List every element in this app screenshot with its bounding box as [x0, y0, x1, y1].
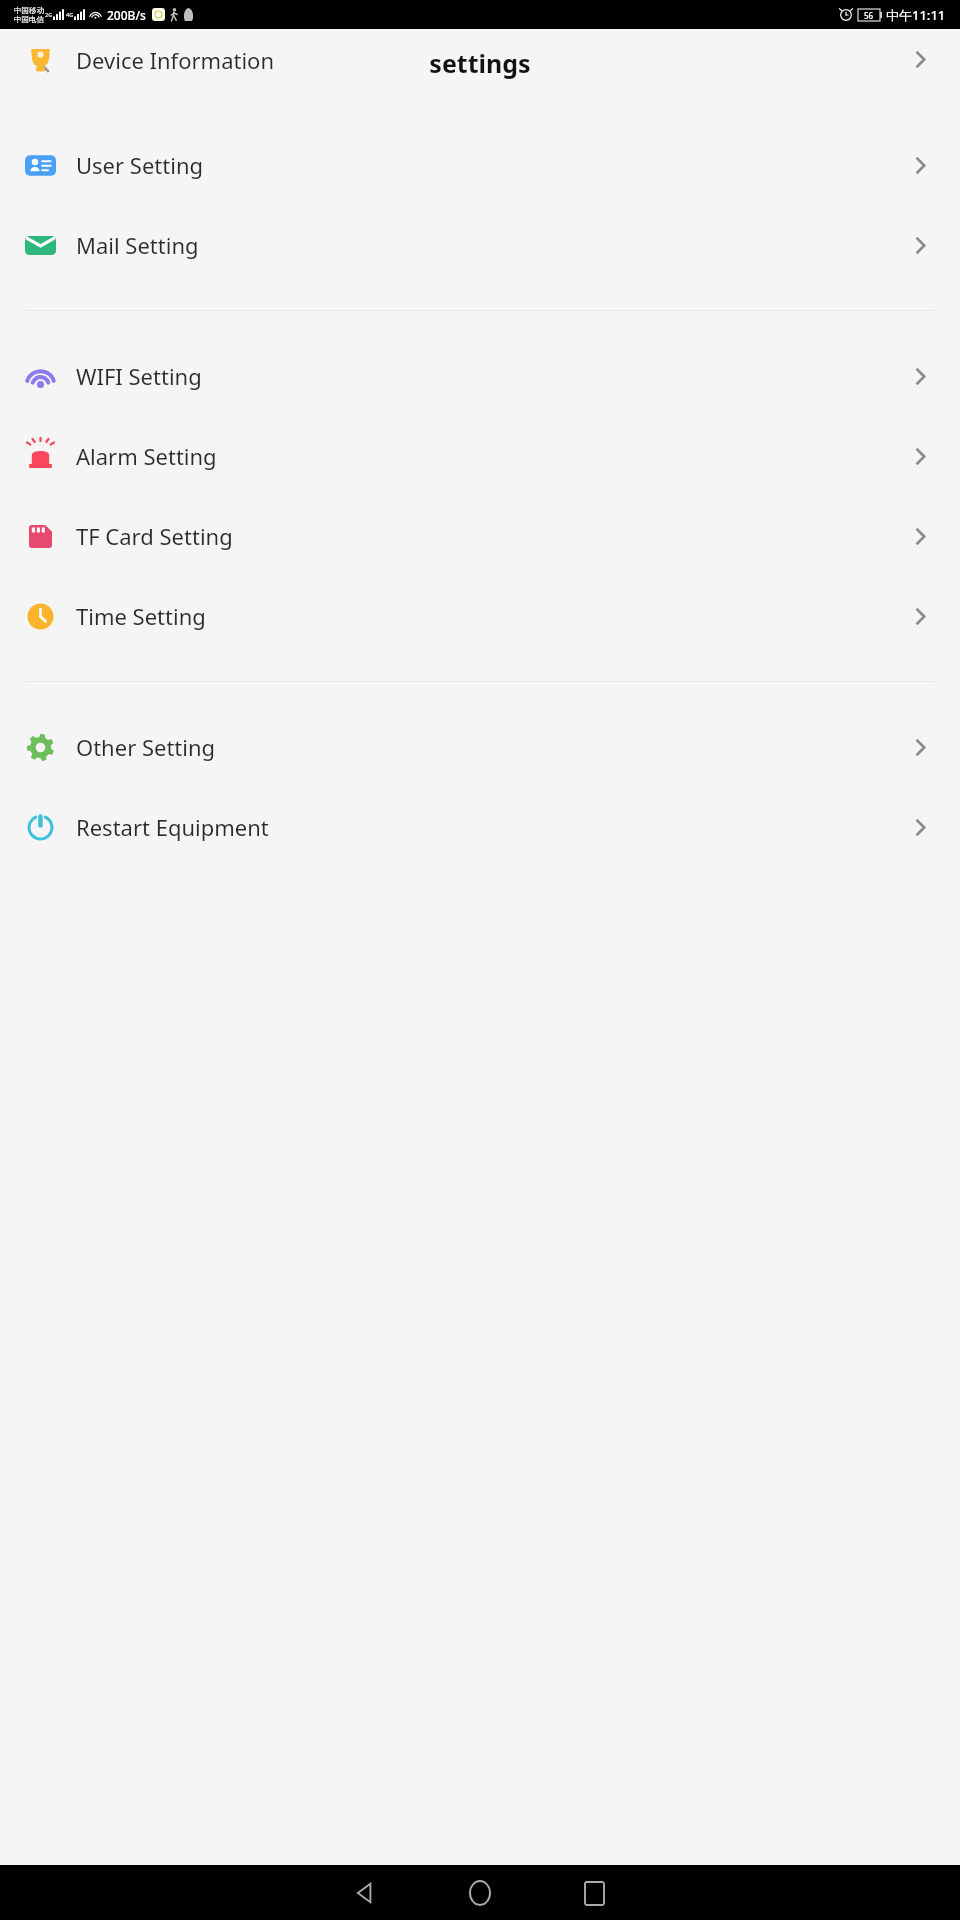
button[interactable]: Back — [340, 1867, 392, 1919]
button[interactable]: User Setting — [0, 125, 960, 205]
staticText: Alarm Setting — [76, 441, 217, 471]
staticText: Device Information — [76, 45, 275, 73]
staticText: 中午11:11 — [886, 6, 946, 24]
staticText: User Setting — [76, 150, 204, 180]
button[interactable]: TF Card Setting — [0, 496, 960, 576]
staticText: Other Setting — [76, 732, 216, 762]
staticText: Time Setting — [76, 601, 206, 631]
staticText: 56 — [864, 10, 874, 21]
button[interactable]: Home — [454, 1867, 506, 1919]
staticText: Mail Setting — [76, 230, 199, 260]
button[interactable]: Recent apps — [568, 1867, 620, 1919]
staticText: 中国移动 — [14, 6, 44, 15]
button[interactable]: Alarm Setting — [0, 416, 960, 496]
staticText: 中国电信 — [14, 15, 44, 24]
staticText: Restart Equipment — [76, 812, 269, 842]
button[interactable]: Time Setting — [0, 576, 960, 656]
staticText: 200B/s — [107, 7, 146, 23]
button[interactable]: Other Setting — [0, 707, 960, 787]
staticText: 2G — [45, 11, 53, 18]
button[interactable]: Back — [20, 39, 68, 87]
staticText: settings — [429, 46, 531, 80]
button[interactable]: WIFI Setting — [0, 336, 960, 416]
staticText: WIFI Setting — [76, 361, 202, 391]
staticText: TF Card Setting — [76, 521, 233, 551]
staticText: 4G — [66, 11, 74, 18]
button[interactable]: Mail Setting — [0, 205, 960, 285]
button[interactable]: Restart Equipment — [0, 787, 960, 867]
